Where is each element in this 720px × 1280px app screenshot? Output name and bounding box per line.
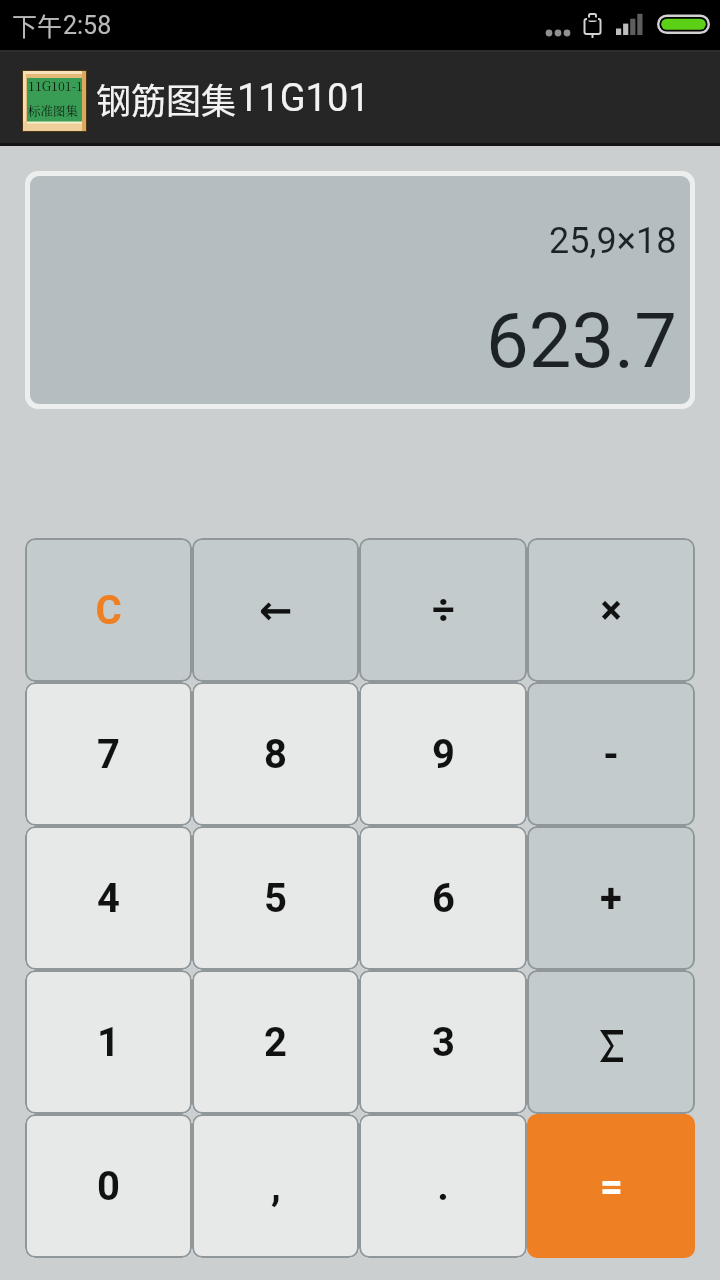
other: Sum [600, 1030, 623, 1062]
button[interactable]: 6 [359, 826, 527, 970]
staticText: ÷ [432, 587, 455, 634]
button[interactable]: , [192, 1114, 359, 1258]
other: Backspace [259, 587, 293, 634]
staticText: 623.7 [486, 296, 677, 385]
staticText: 25,9×18 [549, 220, 677, 262]
staticText: 1 [97, 1019, 120, 1066]
button[interactable]: 4 [25, 826, 192, 970]
staticText: C [95, 587, 122, 634]
staticText: 0 [97, 1163, 120, 1210]
button[interactable]: 7 [25, 682, 192, 826]
staticText: = [600, 1163, 623, 1210]
button[interactable]: . [359, 1114, 527, 1258]
staticText: 钢筋图集 [96, 73, 237, 124]
button[interactable]: 5 [192, 826, 359, 970]
staticText: 2 [264, 1019, 287, 1066]
button[interactable]: + [527, 826, 695, 970]
button[interactable]: 2 [192, 970, 359, 1114]
staticText: 3 [432, 1019, 455, 1066]
button[interactable]: 8 [192, 682, 359, 826]
button[interactable]: 0 [25, 1114, 192, 1258]
staticText: + [600, 875, 622, 922]
staticText: ← [259, 587, 293, 634]
button[interactable]: 9 [359, 682, 527, 826]
button[interactable]: ÷ [359, 538, 527, 682]
staticText: 5 [264, 875, 287, 922]
staticText: . [437, 1163, 449, 1210]
staticText: 标准图集 [28, 102, 79, 120]
button[interactable]: C [25, 538, 192, 682]
staticText: 6 [432, 875, 455, 922]
staticText: 11G101-1 [28, 77, 83, 95]
staticText: 2:58 [63, 11, 112, 40]
button[interactable]: - [527, 682, 695, 826]
staticText: 7 [97, 731, 120, 778]
staticText: 下午 [12, 7, 63, 43]
staticText: 8 [264, 731, 287, 778]
button[interactable]: 1 [25, 970, 192, 1114]
staticText: 11G101 [237, 76, 370, 121]
staticText: , [271, 1163, 281, 1210]
button[interactable]: 3 [359, 970, 527, 1114]
staticText: 9 [432, 731, 455, 778]
button[interactable]: Equals [527, 1114, 695, 1258]
button[interactable]: Sum [527, 970, 695, 1114]
staticText: × [600, 587, 622, 634]
staticText: - [603, 731, 619, 778]
button[interactable]: Backspace [192, 538, 359, 682]
staticText: 4 [97, 875, 120, 922]
button[interactable]: × [527, 538, 695, 682]
